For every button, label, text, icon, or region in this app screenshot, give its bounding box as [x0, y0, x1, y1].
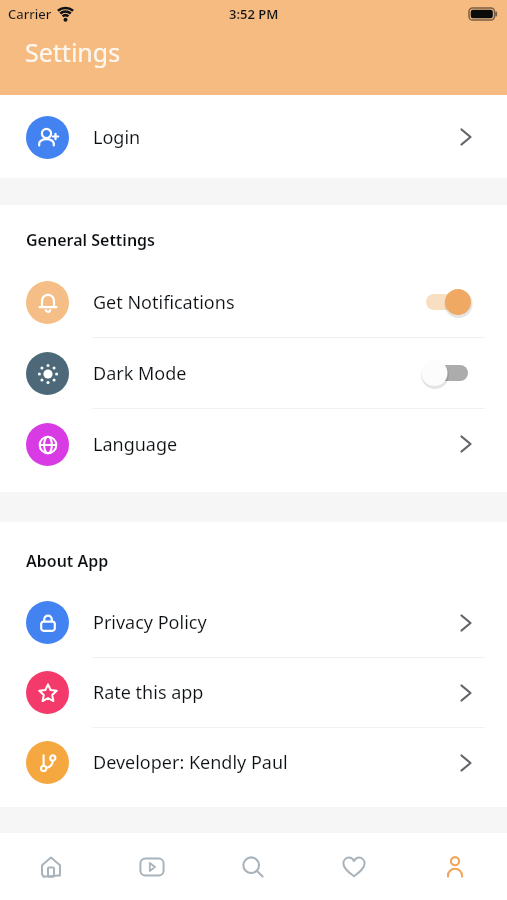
button[interactable]: Get Notifications	[0, 267, 507, 337]
staticText: 3:52 PM	[229, 5, 279, 23]
staticText: General Settings	[26, 229, 156, 251]
staticText: Get Notifications	[93, 290, 235, 315]
button[interactable]	[426, 358, 474, 388]
staticText: Dark Mode	[93, 361, 187, 386]
button[interactable]	[303, 833, 404, 900]
staticText: Privacy Policy	[93, 610, 207, 635]
staticText: Carrier	[8, 5, 52, 23]
button[interactable]: Language	[0, 409, 507, 479]
staticText: Rate this app	[93, 680, 204, 705]
button[interactable]	[101, 833, 202, 900]
staticText: Settings	[25, 35, 121, 69]
button[interactable]	[404, 833, 505, 900]
button[interactable]	[202, 833, 303, 900]
button[interactable]: Login	[0, 102, 507, 172]
staticText: Login	[93, 125, 141, 150]
button[interactable]: Developer: Kendly Paul	[0, 728, 507, 797]
button[interactable]	[0, 833, 101, 900]
staticText: Language	[93, 432, 178, 457]
button[interactable]: Privacy Policy	[0, 588, 507, 657]
button[interactable]: Rate this app	[0, 658, 507, 727]
button[interactable]: Dark Mode	[0, 338, 507, 408]
staticText: Developer: Kendly Paul	[93, 750, 288, 775]
staticText: About App	[26, 550, 109, 572]
button[interactable]	[426, 287, 474, 317]
